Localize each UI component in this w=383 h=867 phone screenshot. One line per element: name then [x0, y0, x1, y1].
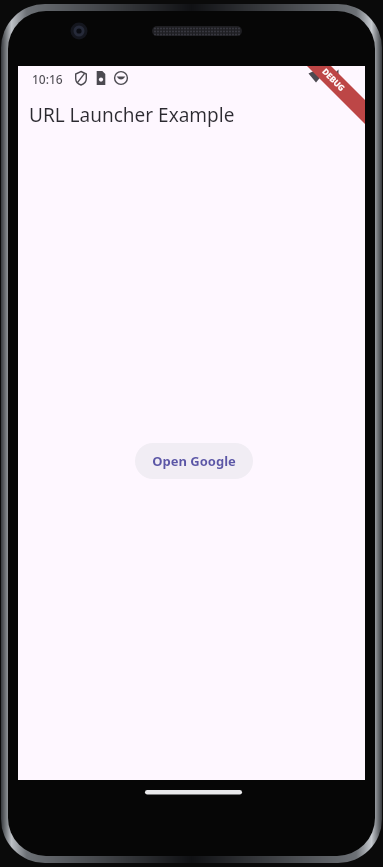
staticText: 10:16: [32, 71, 63, 87]
staticText: DEBUG: [320, 66, 348, 93]
staticText: URL Launcher Example: [29, 102, 235, 128]
button[interactable]: Open Google: [135, 443, 253, 479]
staticText: Open Google: [152, 452, 236, 470]
